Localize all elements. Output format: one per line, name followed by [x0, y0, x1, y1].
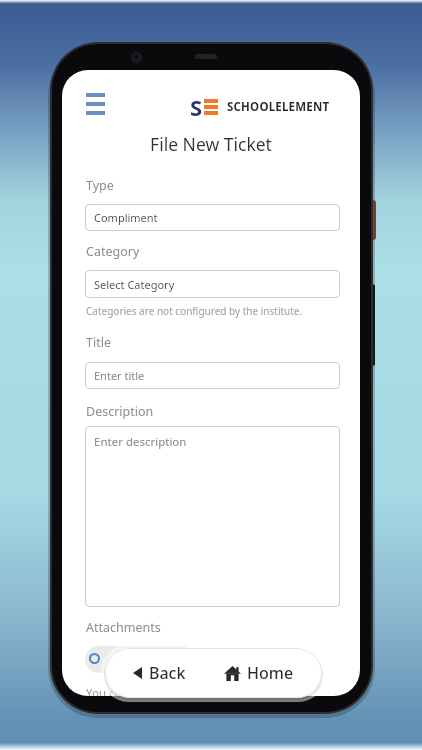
staticText: Enter title — [94, 368, 145, 383]
staticText: Title — [86, 334, 111, 351]
staticText: Enter description — [94, 434, 187, 450]
staticText: Category — [86, 243, 140, 260]
button[interactable] — [85, 646, 195, 673]
button[interactable]: Enter title — [85, 362, 340, 389]
staticText: Type — [86, 177, 114, 194]
staticText: Select Category — [94, 277, 175, 292]
staticText: You ca — [86, 685, 121, 696]
staticText: Attachments — [86, 619, 161, 636]
staticText: S — [190, 92, 203, 122]
staticText: Compliment — [94, 210, 158, 225]
staticText: Categories are not configured by the ins… — [86, 304, 303, 318]
staticText: Description — [86, 403, 154, 420]
button[interactable]: Home — [216, 652, 302, 694]
button[interactable] — [86, 90, 116, 118]
staticText: File New Ticket — [62, 132, 360, 156]
button[interactable]: Enter description — [85, 426, 340, 607]
staticText: Back — [149, 662, 186, 684]
button[interactable]: Back — [125, 652, 194, 694]
button[interactable]: Select Category — [85, 270, 340, 298]
staticText: SCHOOLELEMENT — [227, 99, 330, 115]
staticText: Home — [247, 662, 294, 684]
button[interactable]: Compliment — [85, 204, 340, 231]
